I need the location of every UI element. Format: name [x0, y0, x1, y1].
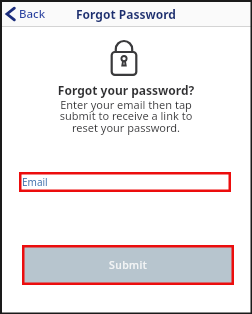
- button[interactable]: Back: [5, 6, 46, 22]
- staticText: Enter your email then tap submit to rece…: [0, 97, 252, 135]
- staticText: Forgot Password: [76, 6, 176, 22]
- staticText: Back: [19, 6, 46, 22]
- button[interactable]: Email: [19, 172, 231, 192]
- staticText: Forgot your password?: [0, 82, 252, 98]
- staticText: Email: [22, 175, 48, 189]
- staticText: Submit: [109, 258, 148, 272]
- button[interactable]: Submit: [22, 245, 234, 285]
